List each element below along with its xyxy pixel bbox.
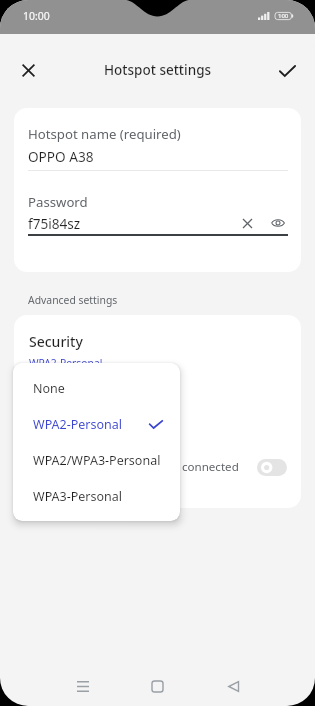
button[interactable]: Confirm [271,54,304,87]
staticText: WPA3-Personal [33,488,163,505]
button[interactable]: Clear [237,213,257,233]
button[interactable]: Recents [65,668,101,704]
staticText: WPA2/WPA3-Personal [33,452,163,469]
staticText: Hotspot settings [104,61,212,79]
staticText: Advanced settings [28,293,118,307]
button[interactable]: None [13,370,180,406]
button[interactable]: WPA3-Personal [13,478,180,514]
button[interactable]: Close [12,54,45,87]
staticText: Security [29,332,83,351]
staticText: None [33,380,163,397]
button[interactable]: WPA2-Personal [13,406,180,442]
staticText: WPA2-Personal [29,356,103,370]
staticText: 10:00 [23,9,50,23]
staticText: 100 [278,12,289,20]
button[interactable]: Show password [268,213,288,233]
staticText: OPPO A38 [28,147,94,166]
staticText: 2.4 GHz [29,419,67,433]
button[interactable]: WPA2/WPA3-Personal [13,442,180,478]
button[interactable]: Home [139,668,175,704]
staticText: Password [28,193,88,211]
staticText: f75i84sz [28,214,81,233]
staticText: Hotspot name (required) [28,125,181,143]
button[interactable]: Back [215,668,251,704]
staticText: WPA2-Personal [33,416,149,433]
button[interactable]: Notify when devices connected [257,459,287,476]
staticText: Notify me when devices are connected [29,459,257,475]
